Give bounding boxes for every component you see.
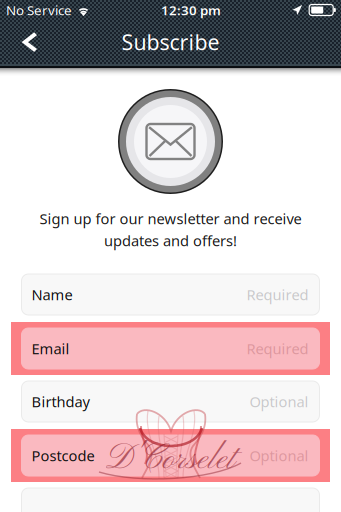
button[interactable]: Postcode [0,429,341,482]
button[interactable] [0,482,341,512]
staticText: Required [246,339,308,358]
button[interactable]: Birthday [0,375,341,428]
staticText: Postcode [31,446,94,465]
staticText: Optional [249,392,308,411]
staticText: Optional [249,446,308,465]
button[interactable]: Name [0,268,341,321]
staticText: Name [31,285,72,304]
staticText: Email [31,339,69,358]
staticText: Subscribe [121,28,219,56]
staticText: Required [246,285,308,304]
staticText: updates and offers! [104,231,237,250]
staticText: No Service [6,1,72,19]
button[interactable]: Email [0,322,341,375]
button[interactable]: Back [0,20,48,64]
staticText: Birthday [31,392,89,411]
staticText: Sign up for our newsletter and receive [39,209,301,228]
staticText: D'Corselet [105,438,234,482]
staticText: 12:30 pm [161,1,221,19]
